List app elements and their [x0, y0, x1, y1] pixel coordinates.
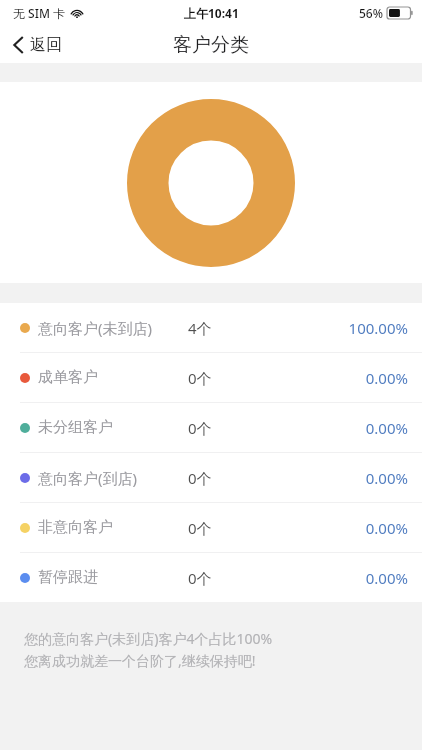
staticText: 暂停跟进 [38, 568, 188, 587]
button[interactable]: 成单客户 [0, 353, 422, 402]
button[interactable]: 意向客户(未到店) [0, 303, 422, 352]
staticText: 0.00% [365, 418, 408, 438]
staticText: 0个 [188, 568, 365, 588]
staticText: 返回 [30, 35, 62, 55]
staticText: 客户分类 [173, 33, 249, 57]
staticText: 0.00% [365, 518, 408, 538]
staticText: 0个 [188, 518, 365, 538]
button[interactable]: 非意向客户 [0, 503, 422, 552]
staticText: 无 SIM 卡 [13, 5, 66, 21]
staticText: 0.00% [365, 568, 408, 588]
staticText: 成单客户 [38, 368, 188, 387]
staticText: 0个 [188, 418, 365, 438]
button[interactable]: 暂停跟进 [0, 553, 422, 602]
staticText: 100.00% [348, 318, 408, 338]
button[interactable]: 返回 [0, 26, 74, 63]
staticText: 0.00% [365, 468, 408, 488]
staticText: 意向客户(到店) [38, 468, 188, 488]
staticText: 未分组客户 [38, 418, 188, 437]
staticText: 0个 [188, 468, 365, 488]
staticText: 您的意向客户(未到店)客户4个占比100% [24, 629, 273, 648]
staticText: 56% [359, 5, 383, 21]
staticText: 0.00% [365, 368, 408, 388]
button[interactable]: 未分组客户 [0, 403, 422, 452]
staticText: 您离成功就差一个台阶了,继续保持吧! [24, 651, 256, 670]
staticText: 意向客户(未到店) [38, 318, 188, 338]
staticText: 0个 [188, 368, 365, 388]
staticText: 非意向客户 [38, 518, 188, 537]
staticText: 4个 [188, 318, 348, 338]
button[interactable]: 意向客户(到店) [0, 453, 422, 502]
staticText: 上午10:41 [184, 5, 239, 21]
